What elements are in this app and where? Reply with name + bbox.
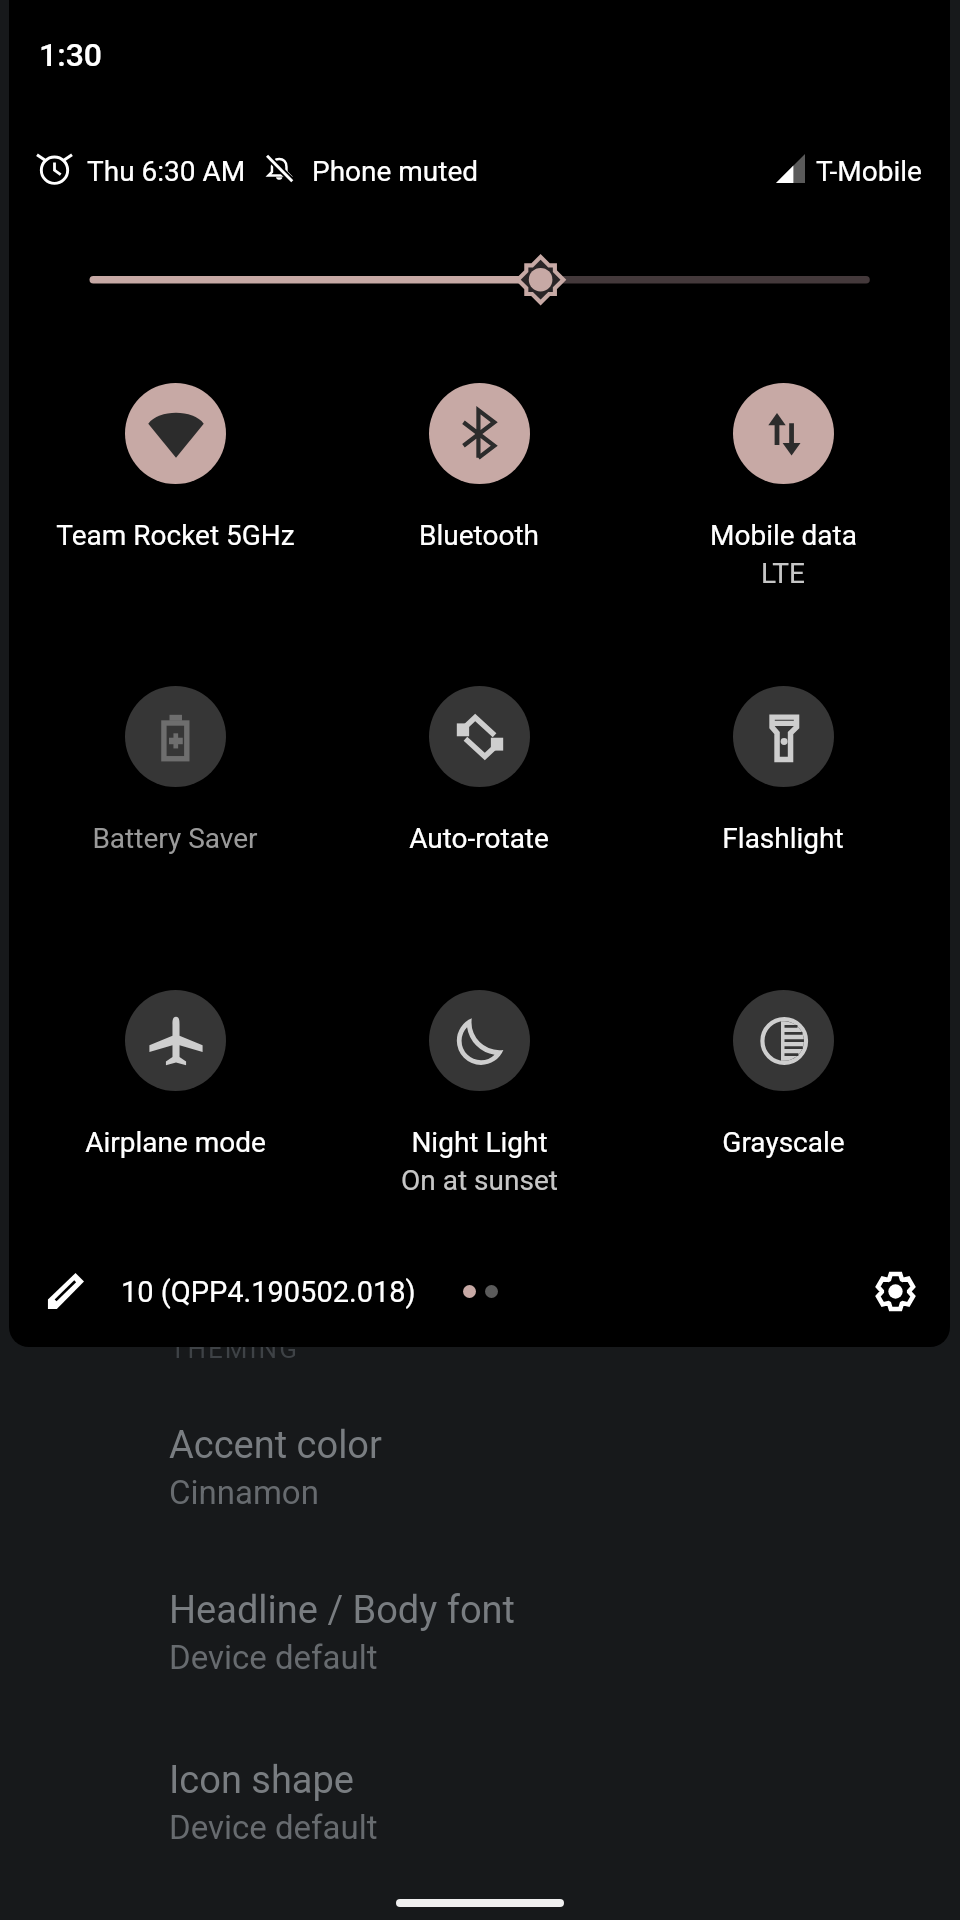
button[interactable]: Settings [867,1263,923,1319]
button[interactable]: Edit tiles [38,1263,94,1319]
staticText: Mobile data [710,519,857,552]
staticText: Airplane mode [85,1126,266,1159]
staticText: THEMING [170,1334,299,1364]
staticText: Flashlight [722,822,844,855]
button[interactable]: Battery Saver [23,686,327,855]
staticText: 1:30 [39,36,102,74]
staticText: Grayscale [722,1126,845,1159]
staticText: Icon shape [169,1758,355,1803]
button[interactable]: Bluetooth [327,383,631,552]
staticText: LTE [761,557,805,590]
staticText: Device default [169,1808,378,1847]
staticText: Team Rocket 5GHz [56,519,295,552]
button[interactable]: Mobile data [631,383,935,590]
staticText: T-Mobile [816,155,922,186]
staticText: Thu 6:30 AM [87,155,246,186]
staticText: On at sunset [401,1164,558,1197]
staticText: Auto-rotate [409,822,549,855]
staticText: Phone muted [312,155,479,186]
staticText: Accent color [169,1423,382,1468]
button[interactable]: Airplane mode [23,990,327,1159]
staticText: Cinnamon [169,1473,319,1512]
staticText: Night Light [411,1126,548,1159]
staticText: 10 (QPP4.190502.018) [121,1275,416,1309]
button[interactable]: Night Light [327,990,631,1197]
staticText: Headline / Body font [169,1588,515,1633]
staticText: Battery Saver [92,822,258,855]
staticText: Bluetooth [419,519,539,552]
button[interactable]: Grayscale [631,990,935,1159]
staticText: Device default [169,1638,378,1677]
button[interactable]: Team Rocket 5GHz [23,383,327,552]
button[interactable]: Auto-rotate [327,686,631,855]
button[interactable]: Flashlight [631,686,935,855]
